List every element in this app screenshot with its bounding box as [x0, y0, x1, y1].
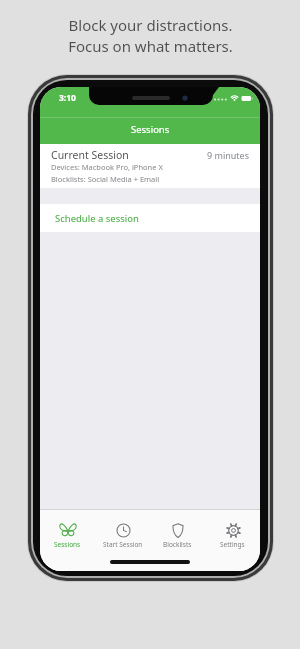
- staticText: Settings: [220, 540, 245, 549]
- staticText: 9 minutes: [207, 149, 249, 161]
- staticText: Schedule a session: [55, 212, 139, 225]
- staticText: 3:10: [59, 92, 76, 104]
- staticText: Sessions: [131, 123, 170, 136]
- button[interactable]: Schedule a session: [40, 204, 260, 232]
- staticText: Devices: Macbook Pro, iPhone X: [51, 162, 163, 172]
- button[interactable]: Blocklists: [150, 522, 205, 549]
- staticText: Blocklists: Social Media + Email: [51, 174, 160, 184]
- staticText: Current Session: [51, 148, 129, 162]
- staticText: Blocklists: [163, 540, 192, 549]
- button[interactable]: Settings: [205, 522, 260, 549]
- button[interactable]: Sessions: [40, 522, 95, 549]
- staticText: Start Session: [103, 540, 143, 549]
- button[interactable]: Start Session: [95, 522, 150, 549]
- staticText: Sessions: [54, 540, 81, 549]
- staticText: Block your distractions. Focus on what m…: [68, 15, 233, 57]
- button[interactable]: Current Session: [40, 144, 260, 188]
